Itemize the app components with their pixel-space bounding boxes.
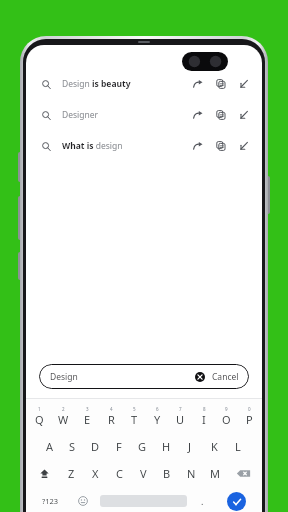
staticText: P xyxy=(246,412,253,427)
button[interactable]: V xyxy=(131,462,155,484)
button[interactable]: Backspace xyxy=(227,462,259,484)
button[interactable]: 7 xyxy=(169,404,192,429)
button[interactable]: Design xyxy=(39,364,249,389)
button[interactable]: 3 xyxy=(75,404,99,429)
staticText: A xyxy=(46,439,54,454)
button[interactable]: 0 xyxy=(238,404,261,429)
staticText: U xyxy=(176,412,185,427)
button[interactable]: Copy xyxy=(214,108,228,122)
staticText: Q xyxy=(35,412,44,427)
button[interactable]: Designer xyxy=(26,100,262,130)
button[interactable]: Share xyxy=(191,77,205,91)
button[interactable]: Z xyxy=(60,462,83,484)
button[interactable]: K xyxy=(202,435,226,457)
staticText: 9 xyxy=(225,406,228,412)
button[interactable]: Design is beauty xyxy=(26,69,262,99)
button[interactable]: M xyxy=(203,462,227,484)
button[interactable]: Share xyxy=(191,139,205,153)
button[interactable]: H xyxy=(154,435,178,457)
staticText: D xyxy=(91,439,100,454)
button[interactable]: Emoji xyxy=(69,490,97,512)
button[interactable]: 6 xyxy=(146,404,169,429)
staticText: Y xyxy=(154,412,161,427)
staticText: W xyxy=(58,412,69,427)
button[interactable]: 1 xyxy=(27,404,51,429)
button[interactable]: D xyxy=(84,435,107,457)
button[interactable]: Copy xyxy=(214,77,228,91)
staticText: R xyxy=(108,412,115,427)
button[interactable]: Insert query xyxy=(237,77,251,91)
button[interactable]: S xyxy=(61,435,84,457)
button[interactable]: 4 xyxy=(99,404,123,429)
button[interactable]: Shift xyxy=(29,462,60,484)
staticText: C xyxy=(116,466,123,481)
staticText: 6 xyxy=(156,406,159,412)
staticText: I xyxy=(202,412,206,427)
button[interactable]: Insert query xyxy=(237,108,251,122)
staticText: M xyxy=(210,466,220,481)
staticText: T xyxy=(131,412,138,427)
staticText: L xyxy=(235,439,241,454)
button[interactable]: 2 xyxy=(51,404,75,429)
button[interactable]: What is design xyxy=(26,131,262,161)
button[interactable]: 5 xyxy=(123,404,146,429)
staticText: 1 xyxy=(38,406,41,412)
staticText: 2 xyxy=(62,406,65,412)
button[interactable]: Search xyxy=(215,490,257,512)
staticText: 0 xyxy=(248,406,251,412)
staticText: S xyxy=(69,439,76,454)
staticText: . xyxy=(201,495,204,507)
staticText: 4 xyxy=(110,406,113,412)
button[interactable]: Insert query xyxy=(237,139,251,153)
staticText: F xyxy=(116,439,122,454)
button[interactable]: A xyxy=(38,435,61,457)
staticText: G xyxy=(138,439,147,454)
staticText: 7 xyxy=(179,406,182,412)
button[interactable]: Clear xyxy=(195,372,205,382)
staticText: B xyxy=(163,466,171,481)
staticText: Designer xyxy=(62,109,99,121)
button[interactable]: G xyxy=(130,435,154,457)
button[interactable]: 8 xyxy=(192,404,215,429)
button[interactable]: N xyxy=(179,462,203,484)
staticText: K xyxy=(211,439,218,454)
staticText: 3 xyxy=(86,406,89,412)
staticText: 8 xyxy=(203,406,206,412)
button[interactable]: ?123 xyxy=(31,490,69,512)
staticText: ?123 xyxy=(42,496,59,506)
staticText: J xyxy=(188,439,192,454)
staticText: Design xyxy=(50,371,78,383)
button[interactable]: F xyxy=(107,435,130,457)
button[interactable]: B xyxy=(155,462,179,484)
staticText: Design is beauty xyxy=(62,78,131,90)
button[interactable]: L xyxy=(226,435,250,457)
button[interactable]: J xyxy=(178,435,202,457)
staticText: N xyxy=(187,466,196,481)
staticText: H xyxy=(162,439,171,454)
button[interactable]: C xyxy=(107,462,131,484)
staticText: O xyxy=(222,412,231,427)
staticText: Z xyxy=(68,466,75,481)
button[interactable]: 9 xyxy=(215,404,238,429)
staticText: X xyxy=(92,466,99,481)
button[interactable]: X xyxy=(83,462,107,484)
staticText: V xyxy=(140,466,147,481)
button[interactable]: . xyxy=(190,490,215,512)
button[interactable]: Copy xyxy=(214,139,228,153)
staticText: 5 xyxy=(133,406,136,412)
staticText: E xyxy=(84,412,91,427)
button[interactable]: Share xyxy=(191,108,205,122)
staticText: Cancel xyxy=(212,371,239,383)
staticText: What is design xyxy=(62,140,123,152)
